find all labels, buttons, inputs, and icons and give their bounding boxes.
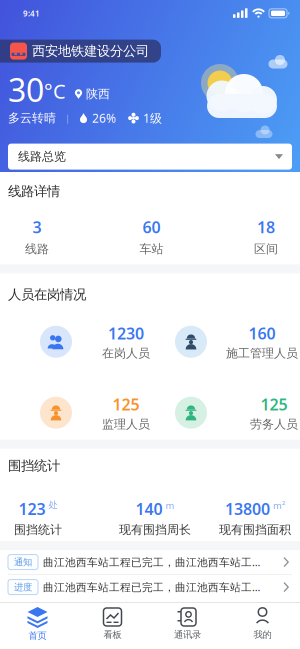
staticText: 125 [112,394,139,415]
staticText: 进度 [14,581,32,593]
staticText: 监理人员 [102,417,150,432]
staticText: 现有围挡面积 [219,522,291,537]
staticText: °C [44,78,66,104]
staticText: 18 [257,216,275,238]
button[interactable]: 线路总览 [8,144,292,170]
staticText: | [65,112,70,124]
staticText: m [165,499,174,511]
staticText: 多云转晴 [8,111,56,125]
staticText: m² [273,499,285,511]
staticText: 通知 [14,556,32,568]
staticText: 通讯录 [174,629,201,640]
staticText: 曲江池西车站工程已完工，曲江池西车站工… [43,555,260,569]
staticText: 1级 [143,110,162,126]
button[interactable]: 通讯录 [150,603,225,649]
staticText: 处 [48,499,57,511]
staticText: 看板 [103,629,121,640]
staticText: 3 [32,216,41,238]
staticText: 123 [18,498,45,519]
staticText: 30 [8,68,44,111]
staticText: 1230 [108,323,144,344]
staticText: 首页 [28,630,46,641]
staticText: 车站 [139,242,163,256]
button[interactable]: 进度 [0,575,300,599]
staticText: 我的 [253,629,271,640]
staticText: 现有围挡周长 [119,522,191,537]
staticText: 125 [260,394,287,415]
staticText: 围挡统计 [8,458,60,474]
staticText: 线路 [25,242,49,256]
staticText: 陕西 [86,87,110,101]
staticText: 60 [142,216,160,238]
staticText: 曲江池西车站工程已完工，曲江池西车站工… [43,580,260,594]
staticText: 围挡统计 [14,522,62,537]
button[interactable]: 看板 [75,603,150,649]
staticText: 160 [248,323,275,344]
button[interactable]: 首页 [0,603,75,649]
staticText: 140 [135,498,162,519]
button[interactable]: 通知 [0,550,300,574]
button[interactable]: 西安地铁建设分公司 [0,40,169,63]
staticText: 人员在岗情况 [8,286,86,303]
staticText: 13800 [225,498,270,519]
staticText: 线路详情 [8,183,60,199]
staticText: 在岗人员 [102,346,150,361]
button[interactable]: 选择地区 陕西 [74,87,110,101]
staticText: 劳务人员 [250,417,298,432]
staticText: 区间 [254,242,278,256]
staticText: 26% [92,110,116,126]
staticText: 施工管理人员 [226,346,298,361]
staticText: 西安地铁建设分公司 [32,43,149,59]
staticText: 线路总览 [18,149,66,164]
button[interactable]: 我的 [225,603,300,649]
staticText: 9:41 [23,8,40,19]
